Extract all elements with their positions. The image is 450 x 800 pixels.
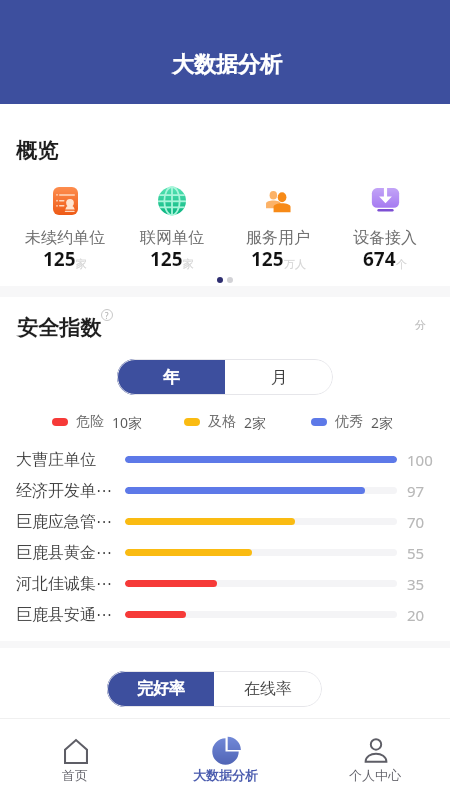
staticText: 97	[407, 481, 425, 501]
button[interactable]: 在线率	[214, 671, 322, 707]
staticText: 大数据分析	[193, 767, 258, 783]
other: 首页	[64, 739, 88, 764]
other: 服务用户	[263, 188, 293, 215]
staticText: 10家	[112, 413, 143, 432]
staticText: 经济开发单⋯	[16, 481, 113, 501]
staticText: 125	[251, 246, 284, 272]
staticText: 100	[407, 450, 433, 470]
staticText: 20	[407, 605, 425, 625]
button[interactable]: 危险	[52, 412, 143, 432]
button[interactable]: 设备接入	[333, 186, 437, 274]
staticText: 家	[76, 257, 87, 271]
button[interactable]: 及格	[184, 412, 267, 432]
staticText: 及格	[208, 413, 236, 431]
staticText: 年	[163, 367, 180, 388]
staticText: 概览	[16, 138, 58, 164]
staticText: 大数据分析	[172, 51, 282, 79]
button[interactable]: 大数据分析	[150, 719, 300, 800]
button[interactable]: 个人中心	[300, 719, 450, 800]
button[interactable]: 完好率	[107, 671, 214, 707]
staticText: 河北佳诚集⋯	[16, 574, 113, 594]
button[interactable]: 未续约单位	[13, 186, 117, 274]
staticText: 2家	[244, 413, 267, 432]
other: 联网单位	[158, 187, 186, 215]
staticText: 联网单位	[140, 228, 204, 248]
staticText: 危险	[76, 413, 104, 431]
staticText: 优秀	[335, 413, 363, 431]
staticText: 万人	[284, 257, 306, 271]
other: 个人中心	[363, 738, 389, 765]
staticText: 2家	[371, 413, 394, 432]
staticText: 个	[396, 257, 407, 271]
staticText: 未续约单位	[25, 228, 105, 248]
staticText: 35	[407, 574, 425, 594]
staticText: ?	[105, 310, 109, 321]
staticText: 125	[43, 246, 76, 272]
staticText: 设备接入	[353, 228, 417, 248]
staticText: 个人中心	[349, 767, 401, 783]
button[interactable]: 年	[117, 359, 225, 395]
staticText: 家	[183, 257, 194, 271]
staticText: 在线率	[244, 679, 292, 699]
staticText: 服务用户	[246, 228, 310, 248]
staticText: 安全指数	[17, 315, 101, 341]
button[interactable]: 联网单位	[120, 186, 224, 274]
staticText: 分	[415, 318, 426, 332]
staticText: 月	[271, 367, 288, 388]
other: 设备接入	[371, 187, 400, 215]
button[interactable]: 月	[225, 359, 333, 395]
staticText: 大曹庄单位	[16, 450, 113, 470]
staticText: 55	[407, 543, 425, 563]
staticText: 674	[363, 246, 396, 272]
other: 大数据分析	[212, 738, 239, 765]
button[interactable]: 优秀	[311, 412, 394, 432]
staticText: 125	[150, 246, 183, 272]
button[interactable]: 首页	[0, 719, 150, 800]
other: 未续约单位	[53, 187, 78, 215]
staticText: 70	[407, 512, 425, 532]
staticText: 巨鹿县安通⋯	[16, 605, 113, 625]
button[interactable]: 服务用户	[226, 186, 330, 274]
staticText: 首页	[62, 767, 88, 783]
staticText: 巨鹿应急管⋯	[16, 512, 113, 532]
staticText: 巨鹿县黄金⋯	[16, 543, 113, 563]
staticText: 完好率	[137, 679, 185, 699]
